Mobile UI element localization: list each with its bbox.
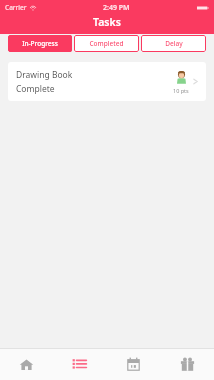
button[interactable]: Drawing Book bbox=[8, 62, 206, 101]
button[interactable]: In-Progress bbox=[8, 35, 72, 52]
staticText: Completed bbox=[89, 39, 124, 48]
staticText: 10 pts bbox=[173, 87, 189, 94]
button[interactable]: Tasks bbox=[53, 349, 106, 380]
button[interactable]: Home bbox=[0, 349, 53, 380]
staticText: Complete bbox=[16, 83, 55, 95]
staticText: Carrier bbox=[5, 3, 27, 12]
button[interactable]: Calendar bbox=[106, 349, 160, 380]
button[interactable]: Completed bbox=[74, 35, 139, 52]
button[interactable]: Rewards bbox=[160, 349, 214, 380]
staticText: In-Progress bbox=[22, 39, 58, 48]
staticText: Drawing Book bbox=[16, 69, 73, 81]
staticText: Delay bbox=[165, 39, 183, 48]
staticText: Tasks bbox=[93, 15, 121, 29]
button[interactable]: Delay bbox=[141, 35, 206, 52]
staticText: 2:49 PM bbox=[103, 3, 130, 13]
